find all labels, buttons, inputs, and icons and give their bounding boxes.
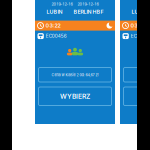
staticText: LUBIN — [131, 9, 147, 15]
staticText: LUBIN — [46, 9, 62, 15]
staticText: Cena w klasie 2 od: 64,67 zł — [51, 73, 98, 77]
staticText: 03:22 — [130, 23, 145, 28]
staticText: 2019-12-16 — [51, 2, 72, 6]
button[interactable]: WYBIERZ — [123, 87, 150, 105]
button[interactable]: WYBIERZ — [38, 87, 111, 105]
staticText: EC00456 — [46, 34, 67, 38]
staticText: 2019-12-16 — [136, 2, 150, 6]
staticText: 03:22 — [45, 23, 60, 28]
staticText: Cena w klasie 2 od: 64,67 zł — [136, 73, 150, 77]
staticText: 2019-12-16 — [77, 2, 98, 6]
staticText: WYBIERZ — [60, 93, 90, 100]
staticText: EC00456 — [131, 34, 150, 38]
staticText: BERLIN HBF — [73, 9, 103, 15]
